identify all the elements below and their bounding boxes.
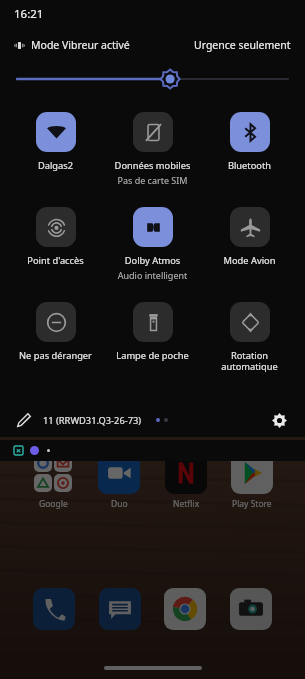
staticText: Duo	[111, 498, 128, 510]
button[interactable]: Point d'accès	[8, 205, 103, 269]
staticText: Pas de carte SIM	[105, 174, 200, 186]
button[interactable]: Chrome	[164, 588, 206, 630]
button[interactable]: Brightness	[17, 68, 288, 90]
staticText: Bluetooth	[202, 159, 297, 172]
button[interactable]: Rotation automatique	[202, 300, 297, 375]
button[interactable]: Settings	[267, 408, 291, 432]
button[interactable]: Ne pas déranger	[8, 300, 103, 364]
staticText: Lampe de poche	[105, 349, 200, 362]
button[interactable]: Lampe de poche	[105, 300, 200, 364]
staticText: Dalgas2	[8, 159, 103, 172]
staticText: Rotation automatique	[202, 349, 297, 373]
button[interactable]: Données mobiles	[105, 110, 200, 188]
button[interactable]: Mode Avion	[202, 205, 297, 269]
button[interactable]: Duo	[98, 452, 140, 494]
staticText: Données mobiles	[105, 159, 200, 172]
button[interactable]: Bluetooth	[202, 110, 297, 174]
staticText: 16:21	[14, 6, 44, 22]
button[interactable]: Dalgas2	[8, 110, 103, 174]
button[interactable]: Camera	[230, 588, 272, 630]
staticText: Point d'accès	[8, 254, 103, 267]
staticText: Dolby Atmos	[105, 254, 200, 267]
staticText: Play Store	[232, 498, 272, 510]
staticText: Ne pas déranger	[8, 349, 103, 362]
button[interactable]: Phone	[33, 588, 75, 630]
button[interactable]: Play Store	[231, 452, 273, 494]
button[interactable]: Netflix	[165, 452, 207, 494]
staticText: 11 (RRWD31.Q3-26-73)	[43, 414, 142, 427]
button[interactable]: Google folder	[32, 452, 74, 494]
staticText: Google	[39, 498, 68, 510]
staticText: Mode Avion	[202, 254, 297, 267]
button[interactable]: Edit tiles	[14, 410, 34, 430]
staticText: Urgence seulement	[194, 38, 291, 52]
staticText: Audio intelligent	[105, 269, 200, 281]
button[interactable]: Dolby Atmos	[105, 205, 200, 283]
staticText: Netflix	[173, 498, 200, 510]
button[interactable]: Messages	[99, 588, 141, 630]
staticText: Mode Vibreur activé	[31, 38, 130, 52]
